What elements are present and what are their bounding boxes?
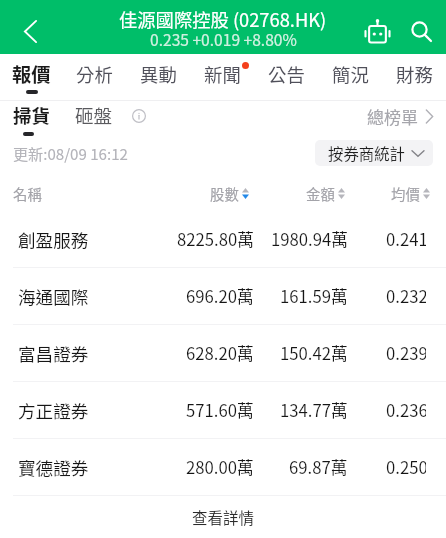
staticText: 161.59萬 [280, 284, 348, 308]
button[interactable]: 分析 [63, 54, 126, 100]
staticText: 海通國際 [18, 284, 89, 309]
staticText: 1980.94萬 [271, 227, 348, 251]
staticText: 富昌證券 [18, 341, 89, 366]
staticText: 分析 [76, 61, 113, 88]
staticText: 公告 [268, 61, 305, 88]
button[interactable]: Back [0, 4, 60, 58]
button[interactable]: AI assistant [355, 9, 399, 53]
staticText: 69.87萬 [289, 455, 348, 479]
staticText: 總榜單 [367, 104, 418, 129]
staticText: 寶德證券 [18, 455, 89, 480]
staticText: 股數 [210, 183, 239, 204]
button[interactable]: 創盈服務 [0, 211, 446, 267]
staticText: 創盈服務 [18, 227, 89, 252]
staticText: 0.241 [386, 227, 426, 251]
staticText: 方正證券 [18, 398, 89, 423]
staticText: 628.20萬 [186, 341, 254, 365]
button[interactable]: 公告 [254, 54, 318, 100]
staticText: 150.42萬 [280, 341, 348, 365]
staticText: 0.250 [386, 455, 426, 479]
button[interactable]: 新聞 [190, 54, 254, 100]
staticText: 0.239 [386, 341, 426, 365]
staticText: 134.77萬 [280, 398, 348, 422]
button[interactable]: 總榜單 [367, 101, 434, 137]
staticText: 696.20萬 [186, 284, 254, 308]
staticText: 砸盤 [75, 101, 113, 128]
staticText: 0.236 [386, 398, 426, 422]
staticText: 金額 [306, 183, 335, 204]
button[interactable]: 富昌證券 [0, 325, 446, 381]
staticText: 0.235 +0.019 +8.80% [150, 28, 297, 51]
button[interactable]: 砸盤 [75, 101, 113, 137]
button[interactable]: Info [126, 101, 152, 137]
staticText: 0.232 [386, 284, 426, 308]
button[interactable]: 按券商統計 [315, 140, 433, 166]
button[interactable]: 查看詳情 [0, 496, 446, 538]
button[interactable]: 海通國際 [0, 268, 446, 324]
staticText: 報價 [12, 60, 51, 88]
button[interactable]: 報價 [0, 54, 63, 100]
staticText: 均價 [391, 183, 420, 204]
staticText: 280.00萬 [186, 455, 254, 479]
button[interactable]: Search [399, 9, 443, 53]
staticText: 異動 [140, 61, 177, 88]
staticText: 按券商統計 [328, 142, 405, 164]
staticText: 財務 [396, 61, 433, 88]
staticText: 8225.80萬 [177, 227, 254, 251]
button[interactable]: 方正證券 [0, 382, 446, 438]
staticText: 簡況 [332, 61, 369, 88]
staticText: 571.60萬 [186, 398, 254, 422]
staticText: 佳源國際控股 (02768.HK) [119, 6, 327, 32]
staticText: 掃貨 [13, 101, 51, 128]
button[interactable]: 簡況 [318, 54, 382, 100]
button[interactable]: 異動 [126, 54, 190, 100]
button[interactable]: 財務 [382, 54, 446, 100]
staticText: 查看詳情 [192, 506, 255, 528]
staticText: 名稱 [13, 183, 42, 204]
staticText: 新聞 [204, 61, 241, 88]
button[interactable]: 掃貨 [13, 101, 51, 137]
button[interactable]: 寶德證券 [0, 439, 446, 495]
staticText: 更新:08/09 16:12 [13, 142, 128, 164]
